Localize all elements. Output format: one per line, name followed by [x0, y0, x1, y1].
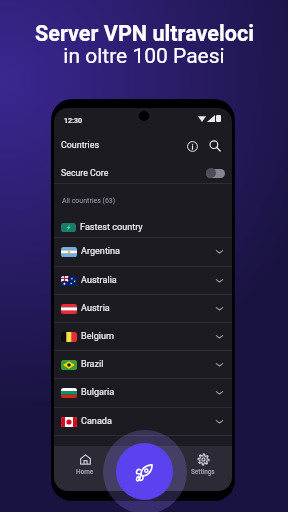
button[interactable]: Secure Core	[54, 163, 232, 183]
button[interactable]: Info	[184, 138, 200, 154]
staticText: Server VPN ultraveloci	[35, 21, 254, 46]
button[interactable]: Bulgaria	[54, 379, 232, 406]
staticText: Countries	[61, 140, 100, 150]
staticText: All countries (63)	[62, 197, 116, 205]
button[interactable]: Austria	[54, 295, 232, 322]
staticText: Settings	[191, 468, 215, 476]
button[interactable]: Brazil	[54, 351, 232, 378]
staticText: in oltre 100 Paesi	[63, 44, 225, 69]
staticText: 12:30	[64, 116, 83, 124]
button[interactable]: Argentina	[54, 238, 232, 265]
staticText: Belgium	[81, 331, 115, 342]
button[interactable]: Home	[65, 452, 105, 478]
staticText: Australia	[81, 275, 117, 286]
button[interactable]: Fastest country	[54, 214, 232, 241]
staticText: Bulgaria	[81, 387, 115, 398]
staticText: Argentina	[81, 246, 121, 257]
staticText: Secure Core	[61, 168, 109, 178]
button[interactable]: Settings	[183, 452, 223, 478]
button[interactable]: Search	[207, 138, 223, 154]
staticText: Fastest country	[80, 222, 143, 233]
staticText: Canada	[81, 416, 112, 427]
button[interactable]: Canada	[54, 408, 232, 435]
staticText: Austria	[81, 303, 110, 314]
button[interactable]: Belgium	[54, 323, 232, 350]
staticText: Home	[76, 468, 94, 476]
staticText: Brazil	[81, 359, 104, 370]
button[interactable]: Australia	[54, 267, 232, 294]
button[interactable]: Connect	[116, 443, 173, 500]
